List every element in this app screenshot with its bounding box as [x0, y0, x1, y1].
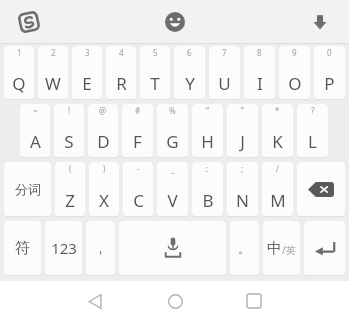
staticText: 9 — [292, 47, 297, 58]
staticText: S — [64, 130, 74, 153]
button[interactable]: Space — [119, 221, 226, 275]
button[interactable]: 123 — [45, 221, 82, 275]
staticText: % — [169, 105, 176, 116]
staticText: / — [276, 163, 279, 174]
staticText: 分词 — [15, 181, 41, 197]
staticText: 。 — [238, 240, 251, 256]
button[interactable]: _ — [157, 162, 188, 216]
staticText: : — [206, 163, 209, 174]
staticText: L — [308, 130, 317, 153]
button[interactable]: ” — [227, 104, 258, 157]
staticText: O — [288, 72, 302, 95]
button[interactable]: 中 — [267, 239, 296, 258]
staticText: - — [137, 163, 140, 174]
staticText: * — [275, 105, 280, 116]
staticText: 7 — [222, 47, 227, 58]
button[interactable]: ， — [86, 221, 115, 275]
staticText: T — [150, 72, 160, 95]
staticText: A — [30, 130, 41, 153]
button[interactable]: 8 — [244, 46, 275, 99]
button[interactable]: / — [262, 162, 293, 216]
staticText: K — [272, 130, 283, 153]
button[interactable]: ( — [55, 162, 85, 216]
button[interactable]: 中 — [263, 221, 300, 275]
staticText: ( — [69, 163, 72, 174]
button[interactable]: 7 — [209, 46, 240, 99]
button[interactable]: ) — [89, 162, 119, 216]
button[interactable]: 符 — [4, 221, 41, 275]
staticText: 0 — [327, 47, 332, 58]
staticText: Q — [12, 72, 26, 95]
button[interactable]: ? — [297, 104, 328, 157]
staticText: W — [45, 72, 61, 95]
staticText: 123 — [51, 238, 77, 258]
button[interactable]: Back — [78, 284, 112, 318]
staticText: C — [133, 189, 144, 212]
staticText: G — [166, 130, 179, 153]
staticText: U — [218, 72, 231, 95]
button[interactable]: Home — [158, 284, 192, 318]
button[interactable]: Recents — [237, 284, 271, 318]
staticText: 2 — [51, 47, 56, 58]
button[interactable]: Backspace — [297, 162, 345, 216]
staticText: N — [236, 189, 249, 212]
button[interactable]: @ — [88, 104, 118, 157]
button[interactable]: # — [122, 104, 153, 157]
button[interactable]: “ — [192, 104, 223, 157]
button[interactable]: Enter — [304, 221, 345, 275]
button[interactable]: 分词 — [4, 162, 51, 216]
button[interactable]: - — [123, 162, 153, 216]
button[interactable]: 3 — [72, 46, 102, 99]
button[interactable]: 4 — [106, 46, 136, 99]
staticText: 8 — [257, 47, 262, 58]
staticText: Z — [65, 189, 75, 212]
staticText: P — [324, 72, 335, 95]
button[interactable]: Sogou menu — [14, 7, 44, 37]
button[interactable]: Hide keyboard — [305, 7, 335, 37]
button[interactable]: 9 — [279, 46, 310, 99]
button[interactable]: ~ — [20, 104, 50, 157]
staticText: 中 — [267, 239, 282, 258]
button[interactable]: % — [157, 104, 188, 157]
staticText: F — [133, 130, 142, 153]
staticText: @ — [99, 105, 107, 116]
staticText: H — [201, 130, 214, 153]
button[interactable]: : — [192, 162, 223, 216]
button[interactable]: 。 — [230, 221, 259, 275]
staticText: I — [257, 72, 263, 95]
button[interactable]: 5 — [140, 46, 170, 99]
staticText: D — [97, 130, 110, 153]
staticText: ; — [241, 163, 244, 174]
staticText: “ — [206, 105, 209, 116]
button[interactable]: 1 — [4, 46, 34, 99]
staticText: ! — [68, 105, 71, 116]
staticText: ) — [103, 163, 106, 174]
other: Enter — [304, 221, 345, 275]
button[interactable]: Emoji — [160, 7, 190, 37]
staticText: J — [240, 130, 245, 153]
button[interactable]: 0 — [314, 46, 345, 99]
button[interactable]: * — [262, 104, 293, 157]
staticText: _ — [171, 163, 175, 174]
button[interactable]: ; — [227, 162, 258, 216]
staticText: ~ — [33, 105, 38, 116]
staticText: 1 — [17, 47, 22, 58]
staticText: 符 — [15, 239, 30, 258]
staticText: 3 — [85, 47, 90, 58]
staticText: 4 — [119, 47, 124, 58]
staticText: ， — [94, 240, 107, 256]
staticText: B — [202, 189, 214, 212]
staticText: M — [270, 189, 286, 212]
staticText: # — [135, 105, 141, 116]
staticText: R — [116, 72, 127, 95]
staticText: X — [99, 189, 109, 212]
staticText: E — [82, 72, 92, 95]
button[interactable]: ! — [54, 104, 84, 157]
staticText: /英 — [282, 243, 296, 257]
staticText: 6 — [187, 47, 192, 58]
staticText: ? — [311, 105, 315, 116]
other: Backspace — [297, 162, 345, 216]
staticText: Y — [185, 72, 195, 95]
button[interactable]: 2 — [38, 46, 68, 99]
button[interactable]: 6 — [174, 46, 205, 99]
